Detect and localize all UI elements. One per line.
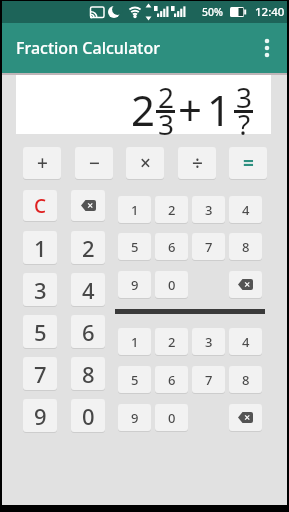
staticText: 3 [34,275,47,305]
staticText: ? [238,105,251,143]
staticText: × [140,150,151,176]
staticText: 1 [131,333,139,351]
button[interactable]: 4 [229,328,262,355]
staticText: 4 [242,333,250,351]
button[interactable]: ÷ [178,147,216,179]
staticText: 6 [168,371,176,389]
button[interactable]: × [126,147,164,179]
button[interactable]: 5 [118,233,151,260]
staticText: Fraction Calculator [16,37,160,59]
staticText: 1 [131,201,139,219]
staticText: ÷ [192,150,203,176]
staticText: 7 [34,359,47,389]
button[interactable]: 1 [23,231,57,264]
staticText: 1 [34,233,47,263]
staticText: 5 [131,371,139,389]
staticText: 9 [131,276,139,294]
button[interactable] [229,271,262,298]
button[interactable] [247,23,287,73]
button[interactable]: 6 [155,366,188,393]
staticText: 3 [158,105,175,143]
button[interactable]: 0 [71,399,105,432]
staticText: 2 [168,201,176,219]
button[interactable]: 9 [118,404,151,431]
staticText: 4 [82,275,95,305]
button[interactable]: 4 [229,196,262,223]
staticText: 7 [205,238,213,256]
button[interactable]: + [23,147,61,179]
staticText: 8 [242,371,250,389]
staticText: C [34,193,47,219]
button[interactable]: 3 [23,273,57,306]
button[interactable]: C [23,190,57,221]
button[interactable]: = [229,147,267,179]
staticText: 50% [202,5,223,19]
button[interactable] [229,404,262,431]
staticText: 8 [242,238,250,256]
staticText: − [89,150,100,176]
staticText: 3 [205,333,213,351]
staticText: + [37,150,48,176]
button[interactable]: 8 [229,366,262,393]
staticText: 9 [34,401,47,431]
staticText: 2 [158,78,175,116]
button[interactable]: 0 [155,271,188,298]
staticText: 5 [131,238,139,256]
staticText: 6 [82,317,95,347]
staticText: 4 [242,201,250,219]
button[interactable]: 1 [118,196,151,223]
staticText: 2 [82,233,95,263]
button[interactable]: 7 [192,233,225,260]
button[interactable]: 2 [71,231,105,264]
button[interactable]: 9 [118,271,151,298]
button[interactable]: 4 [71,273,105,306]
staticText: 9 [131,409,139,427]
staticText: 3 [205,201,213,219]
staticText: 0 [168,276,176,294]
staticText: 5 [34,317,47,347]
staticText: = [243,150,254,176]
button[interactable]: 6 [155,233,188,260]
button[interactable]: 3 [192,196,225,223]
staticText: 1 [207,81,232,138]
staticText: + [178,81,203,138]
staticText: 2 [168,333,176,351]
button[interactable]: 0 [155,404,188,431]
button[interactable]: 2 [155,328,188,355]
button[interactable]: 7 [192,366,225,393]
button[interactable]: 7 [23,357,57,390]
button[interactable]: 2 [155,196,188,223]
staticText: 8 [82,359,95,389]
staticText: 7 [205,371,213,389]
staticText: 2 [131,81,156,138]
staticText: 3 [236,78,253,116]
button[interactable]: 6 [71,315,105,348]
button[interactable]: 5 [23,315,57,348]
button[interactable]: 1 [118,328,151,355]
button[interactable]: − [75,147,113,179]
button[interactable]: 3 [192,328,225,355]
staticText: 0 [168,409,176,427]
button[interactable]: 9 [23,399,57,432]
staticText: 6 [168,238,176,256]
button[interactable]: 5 [118,366,151,393]
button[interactable] [71,190,105,221]
button[interactable]: 8 [229,233,262,260]
staticText: 0 [82,401,95,431]
staticText: 12:40 [255,4,285,20]
button[interactable]: 8 [71,357,105,390]
